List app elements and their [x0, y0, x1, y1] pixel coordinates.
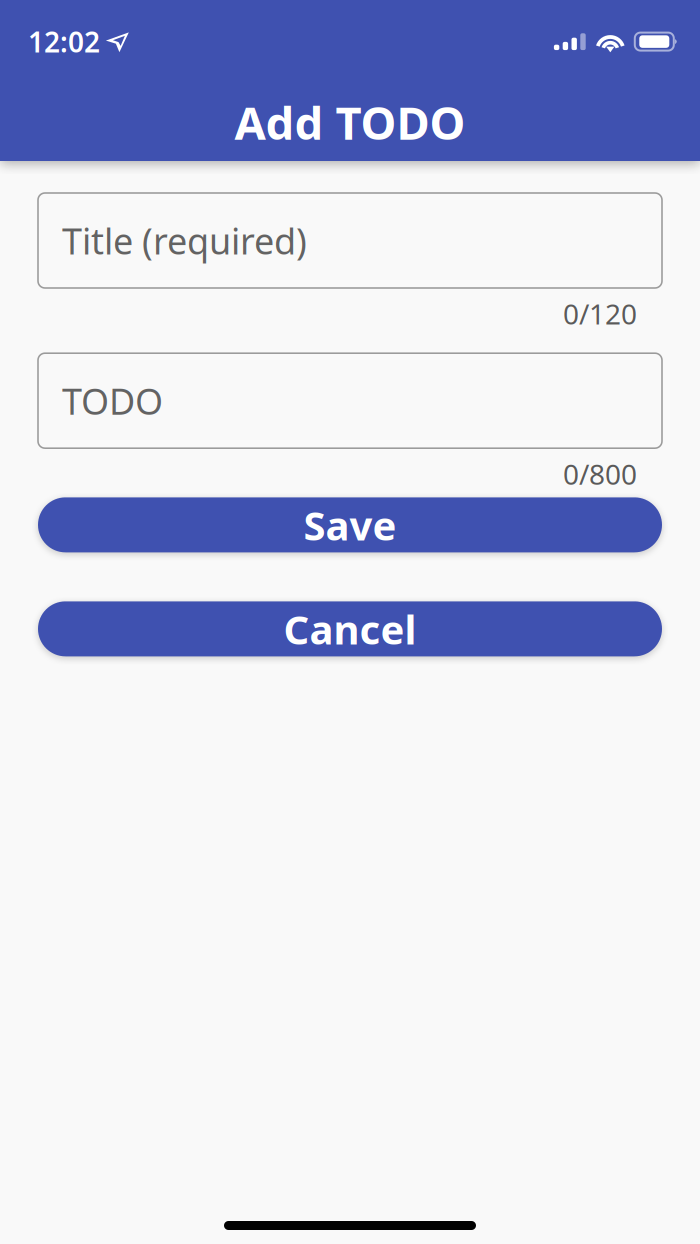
staticText: 0/800	[563, 455, 637, 492]
staticText: Title (required)	[62, 217, 307, 264]
staticText: Add TODO	[234, 92, 465, 152]
staticText: Cancel	[283, 602, 416, 655]
staticText: 0/120	[563, 295, 637, 332]
staticText: TODO	[62, 377, 163, 425]
staticText: Save	[303, 498, 396, 551]
button[interactable]: Title (required)	[38, 193, 662, 288]
staticText: 12:02	[28, 23, 100, 60]
button[interactable]: Cancel	[38, 601, 662, 656]
button[interactable]: Save	[38, 497, 662, 552]
button[interactable]: TODO	[38, 353, 662, 448]
